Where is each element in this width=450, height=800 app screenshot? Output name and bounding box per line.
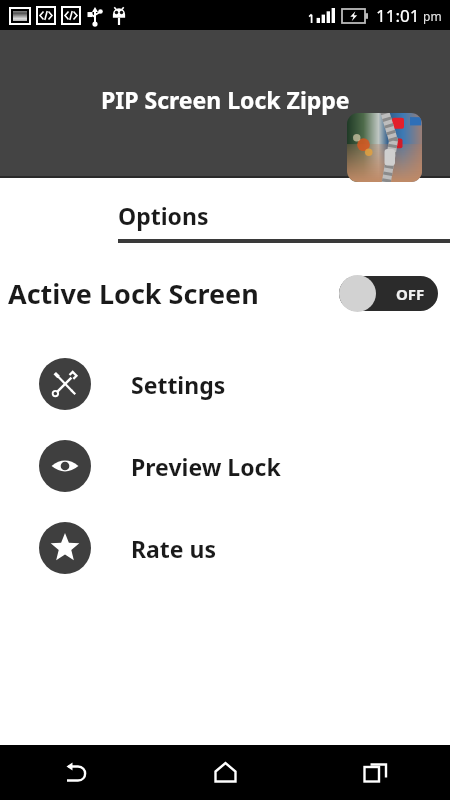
staticText: Settings bbox=[131, 369, 226, 400]
button[interactable]: Rate us bbox=[0, 521, 450, 575]
button[interactable]: Back bbox=[0, 745, 150, 800]
staticText: Rate us bbox=[131, 533, 217, 564]
staticText: Options bbox=[118, 200, 209, 231]
button[interactable]: Active Lock Screen bbox=[0, 267, 450, 319]
button[interactable]: App icon bbox=[347, 113, 422, 182]
staticText: OFF bbox=[396, 284, 425, 304]
button[interactable]: Active Lock Screen toggle, off bbox=[336, 273, 441, 314]
staticText: 11:01 bbox=[376, 4, 420, 27]
button[interactable]: Preview Lock bbox=[0, 439, 450, 493]
staticText: PIP Screen Lock Zippe bbox=[101, 84, 350, 115]
staticText: Preview Lock bbox=[131, 451, 281, 482]
button[interactable]: Home bbox=[150, 745, 300, 800]
staticText: pm bbox=[423, 8, 442, 24]
button[interactable]: Settings bbox=[0, 357, 450, 411]
button[interactable]: Recents bbox=[300, 745, 450, 800]
staticText: Active Lock Screen bbox=[8, 275, 259, 312]
